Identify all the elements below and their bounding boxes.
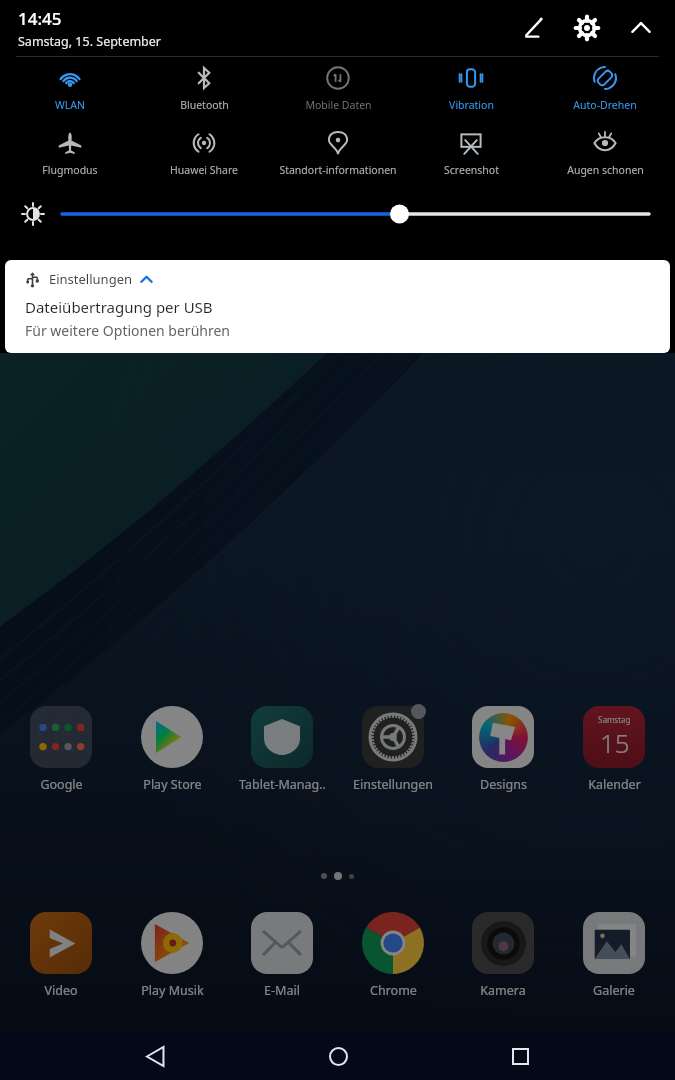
staticText: Samstag — [598, 714, 631, 725]
button[interactable]: Vibration — [407, 63, 535, 114]
staticText: Samstag, 15. September — [18, 33, 162, 50]
staticText: Screenshot — [444, 163, 499, 177]
button[interactable]: WLAN — [6, 63, 134, 114]
staticText: Augen schonen — [567, 163, 644, 177]
button[interactable]: Screenshot — [407, 128, 535, 179]
button[interactable]: Einstellungen — [567, 8, 607, 48]
button[interactable]: Kamera — [452, 912, 554, 999]
button[interactable]: Huawei Share — [140, 128, 268, 179]
staticText: Tablet-Manag.. — [239, 776, 326, 793]
button[interactable]: Augen schonen — [541, 128, 669, 179]
staticText: Mobile Daten — [305, 98, 372, 112]
button[interactable]: Play Musik — [121, 912, 223, 999]
button[interactable]: Samstag — [563, 706, 665, 793]
button[interactable]: Video — [10, 912, 112, 999]
button[interactable]: Tablet-Manag.. — [231, 706, 333, 793]
staticText: Kalender — [588, 776, 641, 793]
button[interactable]: Designs — [452, 706, 554, 793]
button[interactable]: Zuletzt verwendet — [493, 1032, 547, 1080]
button[interactable]: Play Store — [121, 706, 223, 793]
button[interactable]: Auto-Drehen — [541, 63, 669, 114]
button[interactable]: Bearbeiten — [513, 8, 553, 48]
staticText: WLAN — [55, 98, 85, 112]
button[interactable]: Einstellungen — [342, 706, 444, 793]
staticText: Bluetooth — [180, 98, 229, 112]
staticText: Huawei Share — [170, 163, 238, 177]
staticText: 14:45 — [18, 7, 62, 30]
button[interactable]: Chrome — [342, 912, 444, 999]
staticText: Video — [44, 982, 78, 999]
staticText: Flugmodus — [42, 163, 98, 177]
button[interactable]: Startbildschirm — [311, 1032, 365, 1080]
staticText: Standort-informationen — [279, 163, 397, 177]
staticText: Google — [40, 776, 83, 793]
staticText: Play Store — [143, 776, 202, 793]
staticText: Galerie — [593, 982, 635, 999]
staticText: 15 — [600, 725, 630, 760]
staticText: Kamera — [480, 982, 526, 999]
button[interactable]: Einklappen — [621, 8, 661, 48]
staticText: Chrome — [370, 982, 417, 999]
staticText: Play Musik — [141, 982, 204, 999]
button[interactable]: Helligkeit — [62, 199, 649, 229]
button[interactable]: Bluetooth — [140, 63, 268, 114]
button[interactable]: Mobile Daten — [274, 63, 402, 114]
staticText: Einstellungen — [353, 776, 433, 793]
button[interactable]: Zurück — [128, 1032, 182, 1080]
button[interactable]: Standort-informationen — [274, 128, 402, 179]
staticText: Vibration — [449, 98, 494, 112]
button[interactable]: Automatische Helligkeit — [20, 201, 46, 227]
staticText: Für weitere Optionen berühren — [25, 321, 231, 340]
staticText: Designs — [480, 776, 527, 793]
staticText: Auto-Drehen — [573, 98, 637, 112]
button[interactable]: Flugmodus — [6, 128, 134, 179]
button[interactable]: Einstellungen — [5, 260, 670, 353]
button[interactable]: E-Mail — [231, 912, 333, 999]
staticText: E-Mail — [264, 982, 300, 999]
staticText: Einstellungen — [49, 270, 133, 288]
staticText: Dateiübertragung per USB — [25, 297, 213, 317]
button[interactable]: Galerie — [563, 912, 665, 999]
button[interactable]: Google — [10, 706, 112, 793]
